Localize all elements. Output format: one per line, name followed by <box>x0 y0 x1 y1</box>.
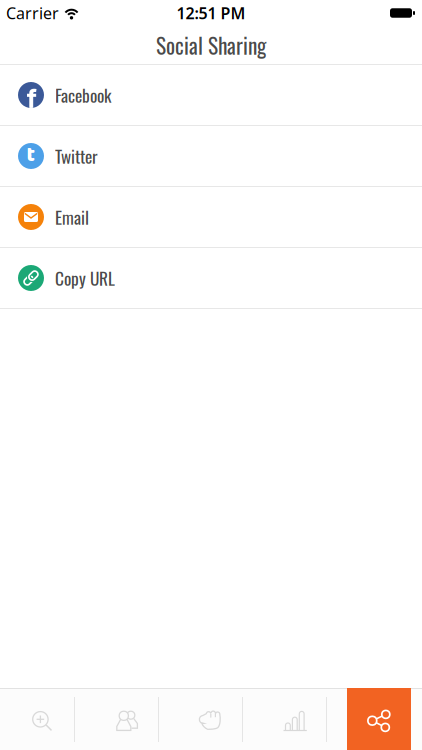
staticText: Carrier <box>6 2 59 24</box>
staticText: Social Sharing <box>156 29 266 61</box>
button[interactable]: Zoom <box>23 702 57 736</box>
button[interactable]: Users <box>109 703 143 737</box>
button[interactable]: t <box>0 126 422 186</box>
staticText: Twitter <box>55 143 98 169</box>
staticText: f <box>26 83 36 115</box>
staticText: Email <box>55 204 89 230</box>
button[interactable]: Share <box>347 688 411 750</box>
staticText: 12:51 PM <box>176 2 245 24</box>
staticText: Copy URL <box>55 265 115 291</box>
button[interactable]: Charts <box>277 703 313 737</box>
staticText: t <box>26 138 34 172</box>
button[interactable]: Copy URL <box>0 248 422 308</box>
staticText: Facebook <box>55 82 111 108</box>
button[interactable]: Email <box>0 187 422 247</box>
button[interactable]: Pan <box>194 703 228 737</box>
button[interactable]: f <box>0 65 422 125</box>
